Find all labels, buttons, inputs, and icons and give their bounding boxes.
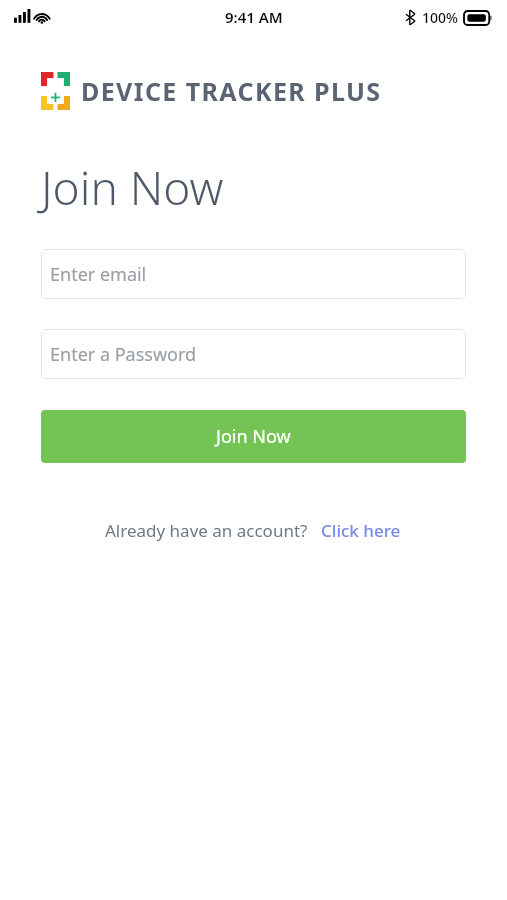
other: Bluetooth on [406, 10, 415, 25]
button[interactable]: Enter email [41, 249, 466, 299]
other: Signal and Wi-Fi status [14, 9, 72, 24]
staticText: Enter a Password [50, 342, 197, 367]
staticText: 100% [422, 8, 458, 27]
staticText: DEVICE TRACKER PLUS [81, 74, 382, 108]
staticText: 9:41 AM [225, 7, 283, 27]
staticText: Already have an account? [105, 519, 308, 542]
staticText: Join Now [41, 156, 224, 219]
staticText: Join Now [216, 424, 291, 449]
staticText: Enter email [50, 262, 147, 287]
button[interactable]: Join Now [41, 410, 466, 463]
button[interactable]: Click here [319, 515, 403, 546]
staticText: Click here [321, 519, 401, 542]
other: Battery full [464, 11, 493, 25]
button[interactable]: Enter a Password [41, 329, 466, 379]
